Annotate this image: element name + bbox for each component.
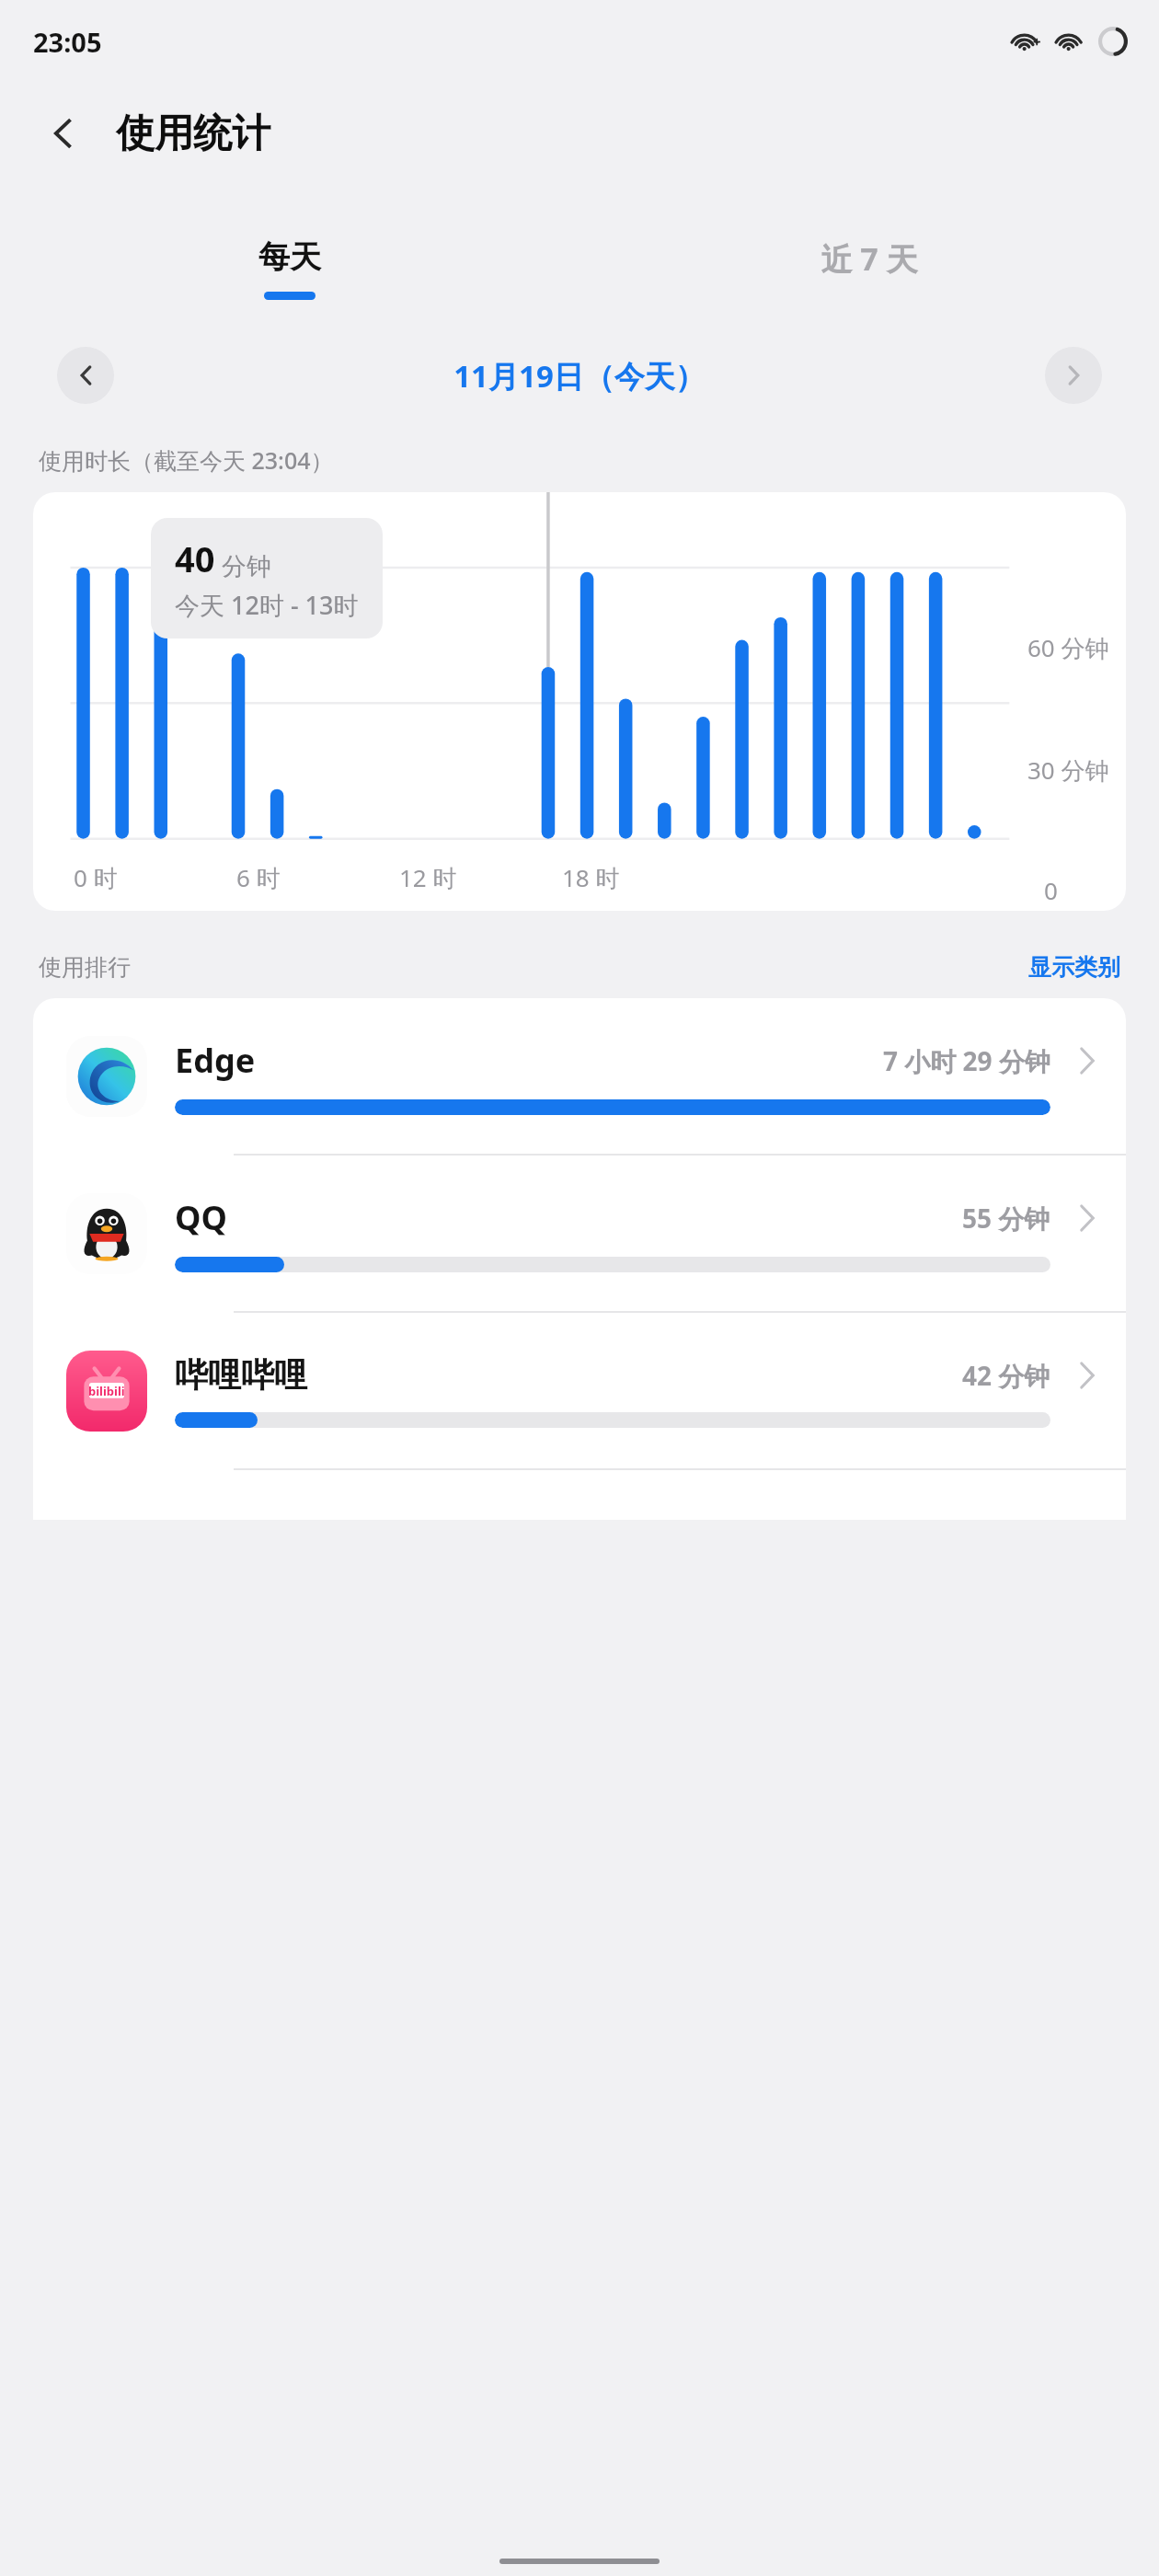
button[interactable]: 每天 [0,237,579,300]
button[interactable]: 近 7 天 [579,237,1159,303]
staticText: 42 分钟 [962,1358,1050,1393]
staticText: 哔哩哔哩 [175,1354,307,1396]
staticText: 30 分钟 [1027,753,1109,787]
button[interactable]: Edge [33,998,1126,1154]
staticText: 分钟 [215,548,272,582]
staticText: 40 [175,535,215,582]
staticText: 6 时 [236,861,281,894]
staticText: 每天 [258,237,321,277]
button[interactable]: 下一天 [1045,347,1102,404]
staticText: QQ [175,1195,227,1240]
staticText: 7 小时 29 分钟 [883,1043,1050,1078]
button[interactable]: bilibili [33,1313,1126,1468]
staticText: 0 [1044,874,1058,906]
button[interactable]: 上一天 [57,347,114,404]
staticText: 0 时 [74,861,118,894]
staticText: bilibili [88,1383,125,1399]
staticText: 18 时 [562,861,620,894]
staticText: 显示类别 [1028,953,1120,982]
button[interactable]: 显示类别 [1028,953,1120,982]
staticText: 今天 12时 - 13时 [175,588,359,622]
staticText: Edge [175,1038,256,1083]
button[interactable]: 返回 [31,101,96,166]
staticText: 55 分钟 [962,1201,1050,1236]
button[interactable]: QQ [33,1156,1126,1311]
staticText: 使用时长（截至今天 23:04） [39,444,334,476]
staticText: 近 7 天 [820,237,918,280]
staticText: 23:05 [33,24,102,60]
staticText: 11月19日（今天） [114,355,1045,397]
staticText: 使用统计 [116,109,270,158]
staticText: 12 时 [399,861,457,894]
staticText: 60 分钟 [1027,631,1109,664]
staticText: 使用排行 [39,953,131,982]
